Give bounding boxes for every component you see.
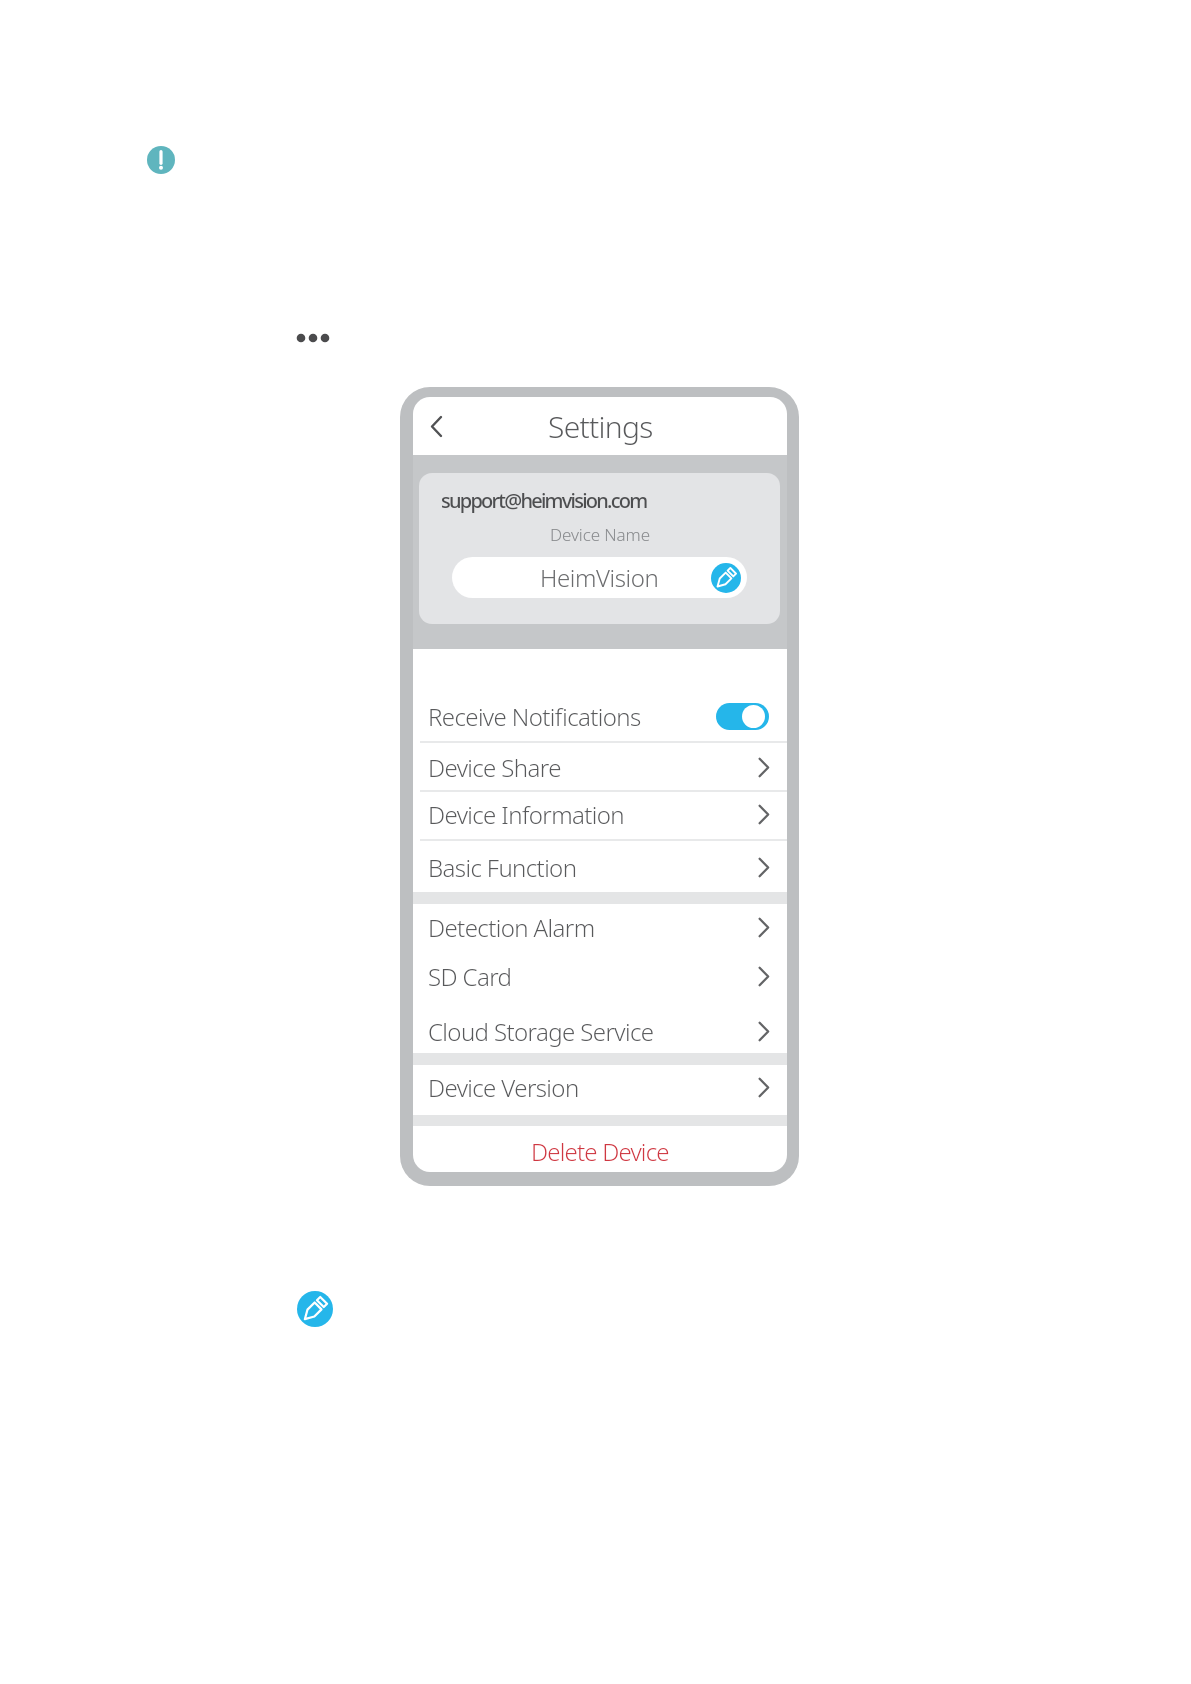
staticText: SD Card: [428, 960, 512, 993]
staticText: Cloud Storage Service: [428, 1015, 654, 1048]
staticText: HeimVision: [540, 561, 659, 594]
button[interactable]: Device Version: [413, 1063, 787, 1111]
staticText: Basic Function: [428, 851, 577, 884]
button[interactable]: Device Share: [413, 743, 787, 791]
button[interactable]: Receive Notifications: [413, 692, 787, 740]
staticText: Settings: [548, 406, 653, 447]
button[interactable]: SD Card: [413, 952, 787, 1000]
button[interactable]: Delete Device: [413, 1127, 787, 1172]
staticText: Device Share: [428, 751, 561, 784]
staticText: Device Name: [550, 523, 650, 546]
button[interactable]: Basic Function: [413, 843, 787, 891]
staticText: Detection Alarm: [428, 911, 595, 944]
staticText: Delete Device: [531, 1135, 669, 1168]
staticText: Device Information: [428, 798, 625, 831]
button[interactable]: Cloud Storage Service: [413, 1007, 787, 1055]
staticText: Receive Notifications: [428, 700, 641, 733]
button[interactable]: [711, 563, 741, 593]
staticText: support@heimvision.com: [441, 487, 647, 514]
button[interactable]: [431, 416, 442, 437]
button[interactable]: [297, 1291, 333, 1327]
button[interactable]: HeimVision: [452, 557, 747, 598]
staticText: Device Version: [428, 1071, 579, 1104]
button[interactable]: [716, 703, 769, 730]
button[interactable]: Device Information: [413, 790, 787, 838]
button[interactable]: Detection Alarm: [413, 903, 787, 951]
